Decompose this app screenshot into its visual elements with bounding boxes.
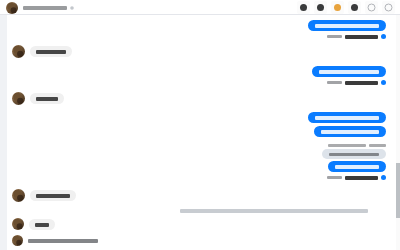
button[interactable] [6,2,74,14]
button[interactable]: Mute [348,1,361,14]
button[interactable] [327,34,386,39]
button[interactable] [314,126,386,137]
button[interactable] [12,235,400,246]
button[interactable] [12,45,400,58]
button[interactable] [328,161,386,172]
button[interactable] [327,80,386,85]
button[interactable] [327,175,386,180]
button[interactable] [12,218,400,230]
button[interactable] [312,66,386,77]
button[interactable]: Pinned [331,1,344,14]
button[interactable]: More options [365,1,378,14]
button[interactable] [12,92,400,105]
button[interactable] [308,112,386,123]
button[interactable] [322,149,386,159]
button[interactable]: Audio call [314,1,327,14]
button[interactable] [12,189,400,202]
button[interactable]: Video call [297,1,310,14]
button[interactable] [308,20,386,31]
button[interactable]: Expand [382,1,395,14]
